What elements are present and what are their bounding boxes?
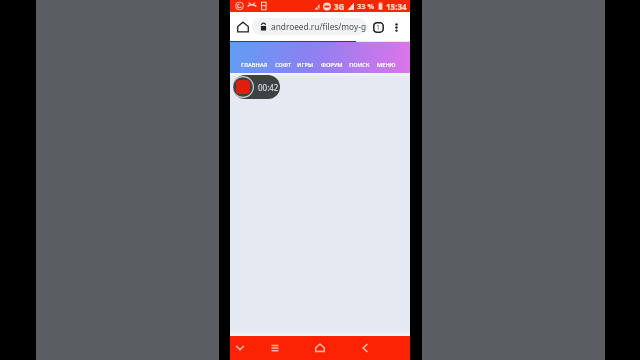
button[interactable]: СОФТ <box>275 61 291 69</box>
staticText: 00:42 <box>258 82 279 93</box>
button[interactable]: Open tabs <box>367 18 389 36</box>
staticText: 15:34 <box>386 1 407 12</box>
button[interactable]: Stop recording <box>233 75 280 99</box>
button[interactable]: ПОИСК <box>349 61 370 69</box>
button[interactable]: Home <box>308 336 332 360</box>
staticText: 3G <box>334 1 345 12</box>
button[interactable]: androeed.ru/files/moy-g <box>252 18 367 35</box>
button[interactable]: Collapse <box>228 336 252 360</box>
staticText: ФОРУМ <box>321 61 343 69</box>
staticText: ИГРЫ <box>297 61 314 69</box>
button[interactable]: Back <box>353 336 377 360</box>
staticText: androeed.ru/files/moy-g <box>271 21 366 32</box>
button[interactable]: ФОРУМ <box>321 61 343 69</box>
staticText: СОФТ <box>275 61 291 69</box>
staticText: ГЛАВНАЯ <box>241 61 268 69</box>
button[interactable]: ГЛАВНАЯ <box>241 61 268 69</box>
staticText: 33 % <box>357 1 375 11</box>
button[interactable]: Menu <box>263 336 287 360</box>
button[interactable]: Home <box>234 18 252 36</box>
staticText: ПОИСК <box>349 61 370 69</box>
button[interactable]: МЕНЮ <box>377 61 396 69</box>
button[interactable]: ИГРЫ <box>297 61 314 69</box>
staticText: МЕНЮ <box>377 61 396 69</box>
button[interactable]: More options <box>389 20 403 34</box>
staticText: 1 <box>376 23 381 33</box>
